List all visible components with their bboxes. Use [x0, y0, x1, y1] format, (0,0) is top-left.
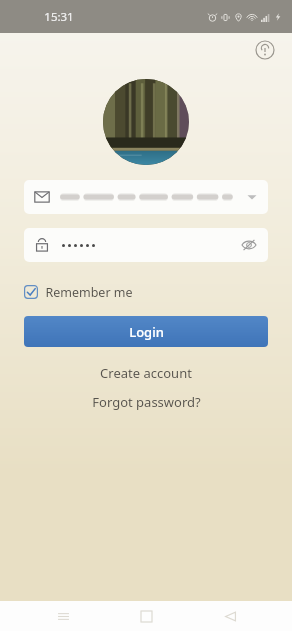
button[interactable]	[24, 180, 268, 214]
staticText: Forgot password?	[92, 393, 201, 411]
button[interactable]: Back	[209, 601, 251, 631]
button[interactable]: Forgot password?	[0, 391, 292, 413]
button[interactable]: Help	[252, 37, 278, 63]
button[interactable]: Show password	[24, 228, 268, 262]
button[interactable]: Home	[125, 601, 167, 631]
staticText: 15:31	[44, 9, 74, 25]
button[interactable]: Recent apps	[42, 601, 84, 631]
button[interactable]: Login	[24, 316, 268, 347]
button[interactable]: Show password	[240, 236, 258, 254]
button[interactable]: Create account	[0, 362, 292, 384]
staticText: Remember me	[45, 284, 133, 301]
button[interactable]: Remember me	[24, 280, 133, 304]
button[interactable]: Profile photo	[103, 79, 189, 165]
staticText: Login	[129, 323, 164, 341]
staticText: Create account	[100, 364, 192, 382]
